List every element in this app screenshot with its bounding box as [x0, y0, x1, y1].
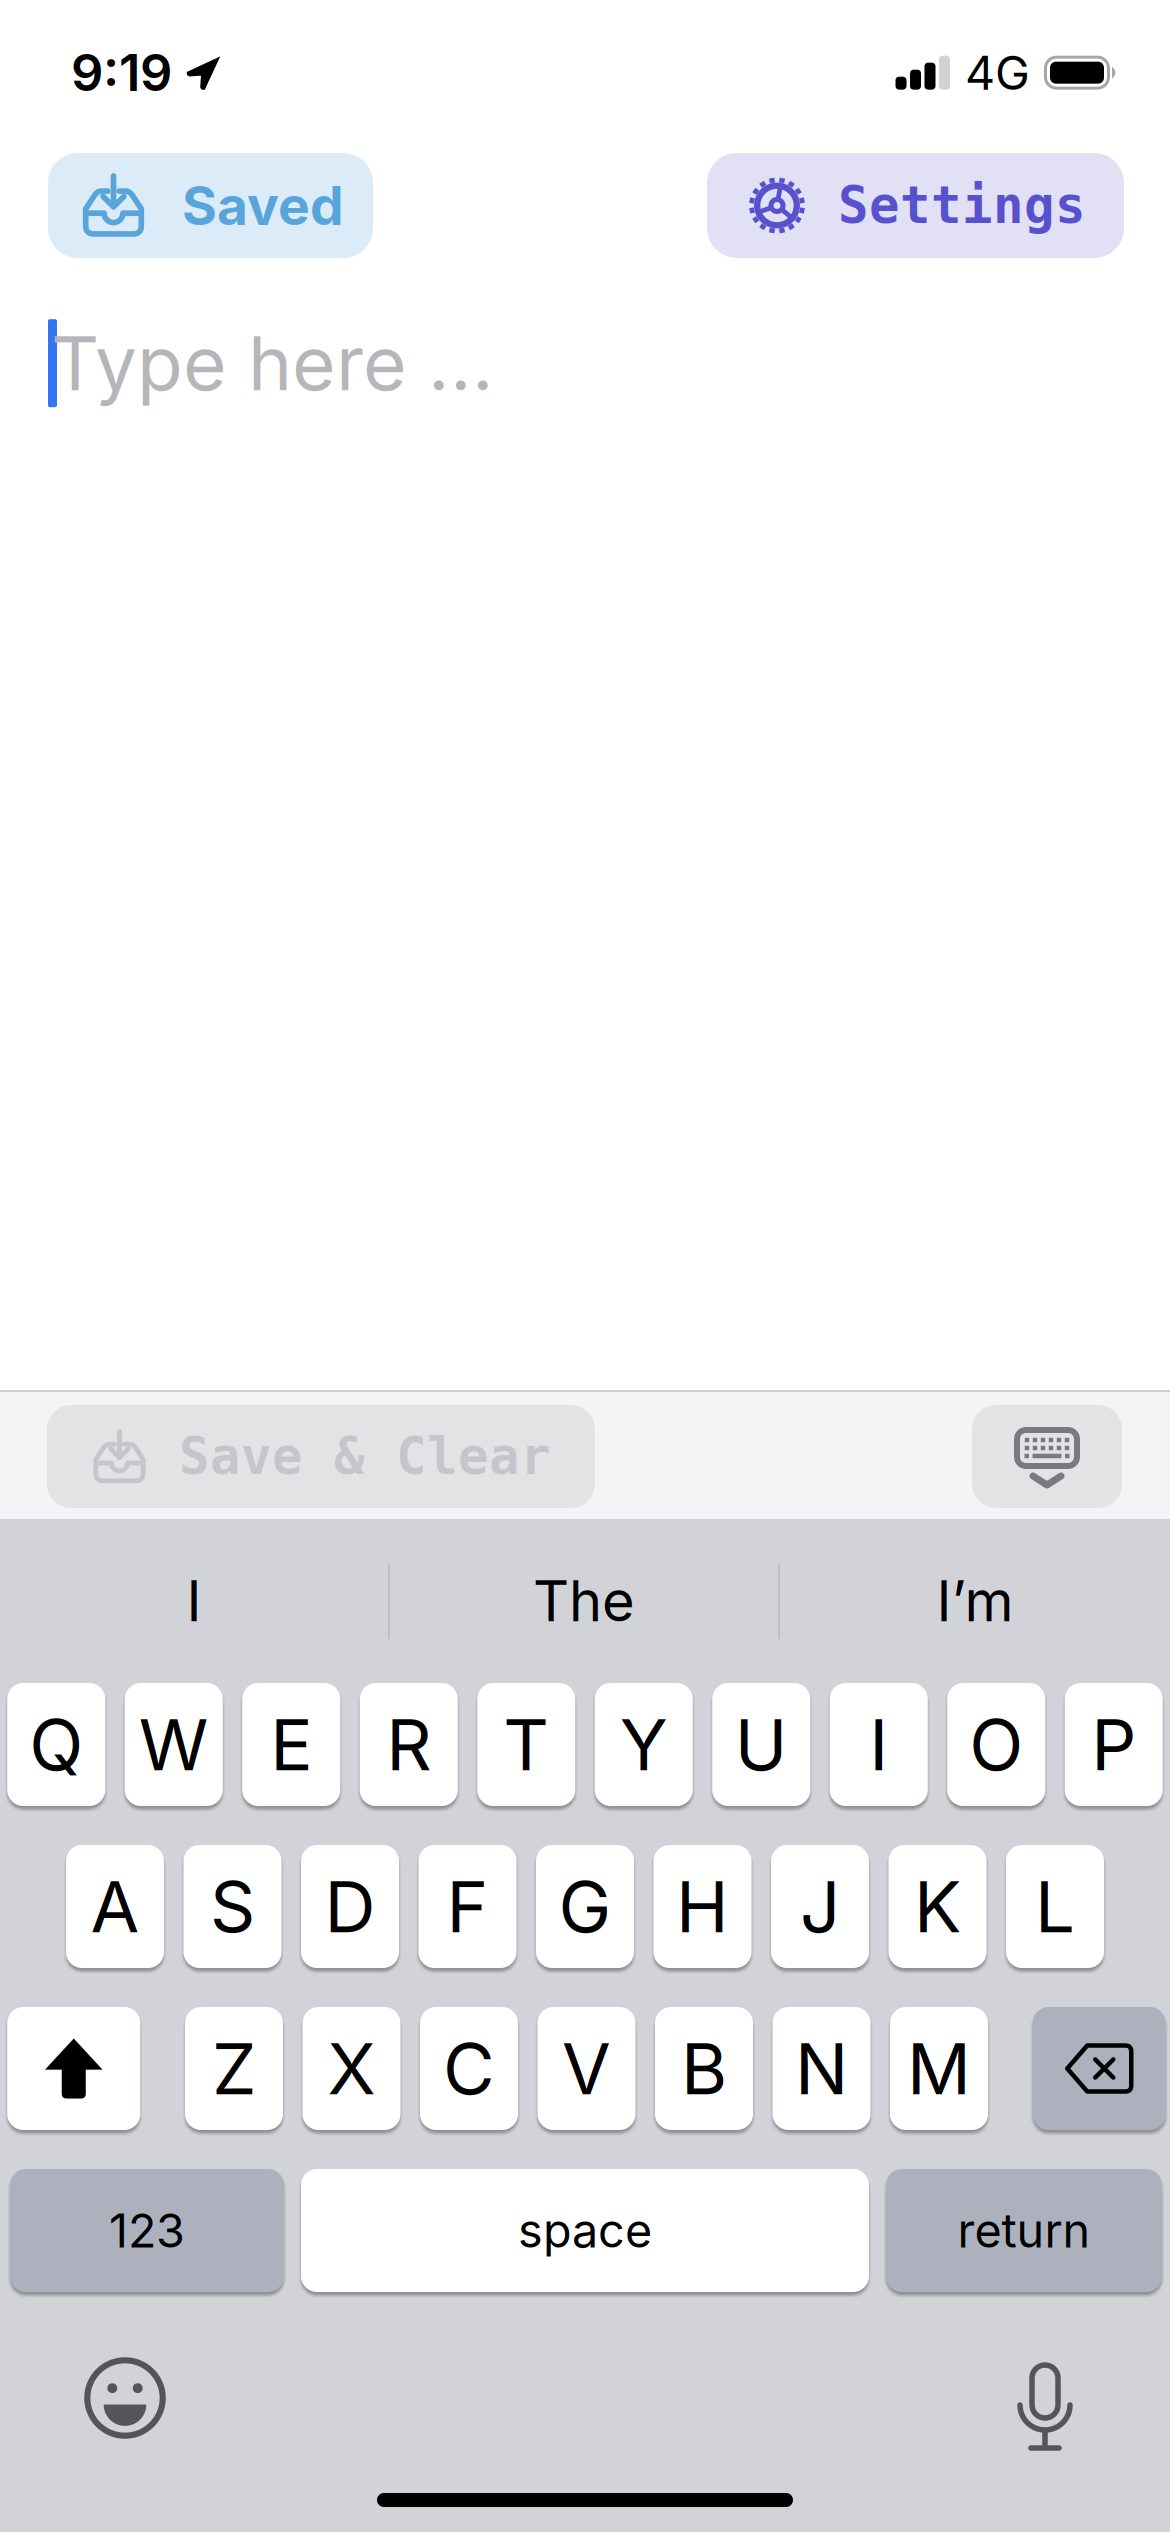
staticText: G [558, 1864, 611, 1949]
staticText: T [503, 1702, 549, 1787]
button[interactable]: Q [7, 1683, 105, 1806]
staticText: D [324, 1864, 375, 1949]
staticText: U [735, 1702, 788, 1787]
button[interactable]: E [242, 1683, 340, 1806]
button[interactable]: The [390, 1519, 778, 1683]
button[interactable]: space [301, 2169, 869, 2292]
button[interactable]: M [890, 2007, 988, 2130]
staticText: I [186, 1567, 201, 1635]
button[interactable]: Settings [707, 153, 1124, 258]
button[interactable]: F [418, 1845, 516, 1968]
button[interactable]: Save & Clear [47, 1405, 595, 1508]
staticText: B [681, 2026, 727, 2111]
staticText: The [533, 1567, 635, 1635]
button[interactable]: return [886, 2169, 1162, 2292]
button[interactable]: I’m [780, 1519, 1170, 1683]
staticText: R [386, 1702, 431, 1787]
button[interactable]: G [536, 1845, 634, 1968]
staticText: 9:19 [71, 42, 172, 103]
staticText: Saved [182, 173, 344, 238]
staticText: I’m [936, 1567, 1013, 1635]
staticText: W [139, 1702, 209, 1787]
staticText: N [795, 2026, 848, 2111]
button[interactable]: Y [595, 1683, 693, 1806]
staticText: K [914, 1864, 961, 1949]
button[interactable]: S [183, 1845, 281, 1968]
staticText: Q [29, 1702, 83, 1787]
button[interactable]: 123 [10, 2169, 284, 2292]
button[interactable]: V [537, 2007, 635, 2130]
staticText: 123 [109, 2202, 185, 2259]
button[interactable]: T [477, 1683, 575, 1806]
button[interactable]: Dismiss Keyboard [972, 1405, 1122, 1508]
staticText: Settings [838, 176, 1086, 235]
button[interactable]: K [888, 1845, 986, 1968]
button[interactable]: L [1006, 1845, 1104, 1968]
button[interactable]: R [360, 1683, 458, 1806]
staticText: M [907, 2026, 971, 2111]
button[interactable]: A [66, 1845, 164, 1968]
button[interactable]: C [420, 2007, 518, 2130]
button[interactable]: Saved [48, 153, 373, 258]
button[interactable]: B [655, 2007, 753, 2130]
button[interactable]: Z [185, 2007, 283, 2130]
button[interactable]: I [830, 1683, 928, 1806]
button[interactable]: O [947, 1683, 1045, 1806]
button[interactable]: W [125, 1683, 223, 1806]
button[interactable]: J [771, 1845, 869, 1968]
button[interactable]: Emoji [84, 2357, 166, 2439]
button[interactable]: U [712, 1683, 810, 1806]
button[interactable]: Delete [1033, 2007, 1166, 2130]
staticText: return [957, 2202, 1090, 2259]
staticText: Z [212, 2026, 256, 2111]
staticText: C [443, 2026, 495, 2111]
staticText: F [446, 1864, 488, 1949]
button[interactable]: N [772, 2007, 870, 2130]
staticText: Type here ... [51, 318, 494, 408]
button[interactable]: H [653, 1845, 751, 1968]
staticText: A [90, 1864, 139, 1949]
staticText: V [562, 2026, 611, 2111]
staticText: S [210, 1864, 255, 1949]
staticText: X [327, 2026, 375, 2111]
button[interactable]: Dictate [1012, 2349, 1078, 2447]
staticText: H [676, 1864, 729, 1949]
staticText: space [518, 2202, 652, 2259]
staticText: Y [620, 1702, 668, 1787]
button[interactable]: Shift [7, 2007, 140, 2130]
staticText: Save & Clear [179, 1427, 551, 1486]
button[interactable]: X [302, 2007, 400, 2130]
staticText: 4G [965, 44, 1030, 101]
staticText: L [1035, 1864, 1075, 1949]
staticText: O [969, 1702, 1023, 1787]
button[interactable]: I [0, 1519, 388, 1683]
button[interactable]: D [301, 1845, 399, 1968]
button[interactable]: P [1065, 1683, 1163, 1806]
staticText: P [1091, 1702, 1136, 1787]
staticText: I [869, 1702, 888, 1787]
staticText: E [270, 1702, 312, 1787]
staticText: J [800, 1864, 840, 1949]
